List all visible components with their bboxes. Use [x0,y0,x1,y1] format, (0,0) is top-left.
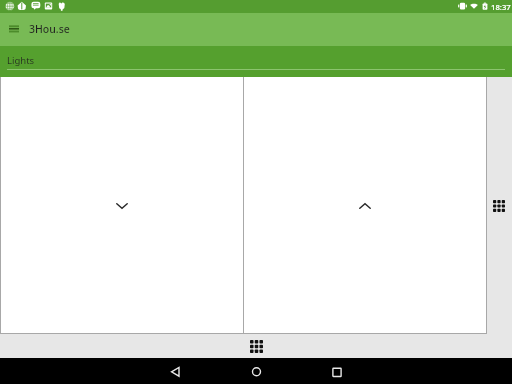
staticText: Lights [7,54,35,67]
button[interactable]: Collapse group [0,77,243,334]
button[interactable]: All apps [246,334,266,358]
button[interactable]: Recent apps [316,358,356,384]
button[interactable]: Expand group [244,77,486,334]
button[interactable]: All apps [487,77,512,359]
staticText: 18:37 [491,2,511,12]
button[interactable]: Lights [3,51,39,70]
button[interactable]: Open navigation menu [2,16,26,42]
button[interactable]: Back [155,358,195,384]
button[interactable]: Home [236,358,276,384]
staticText: 3Hou.se [29,22,70,36]
